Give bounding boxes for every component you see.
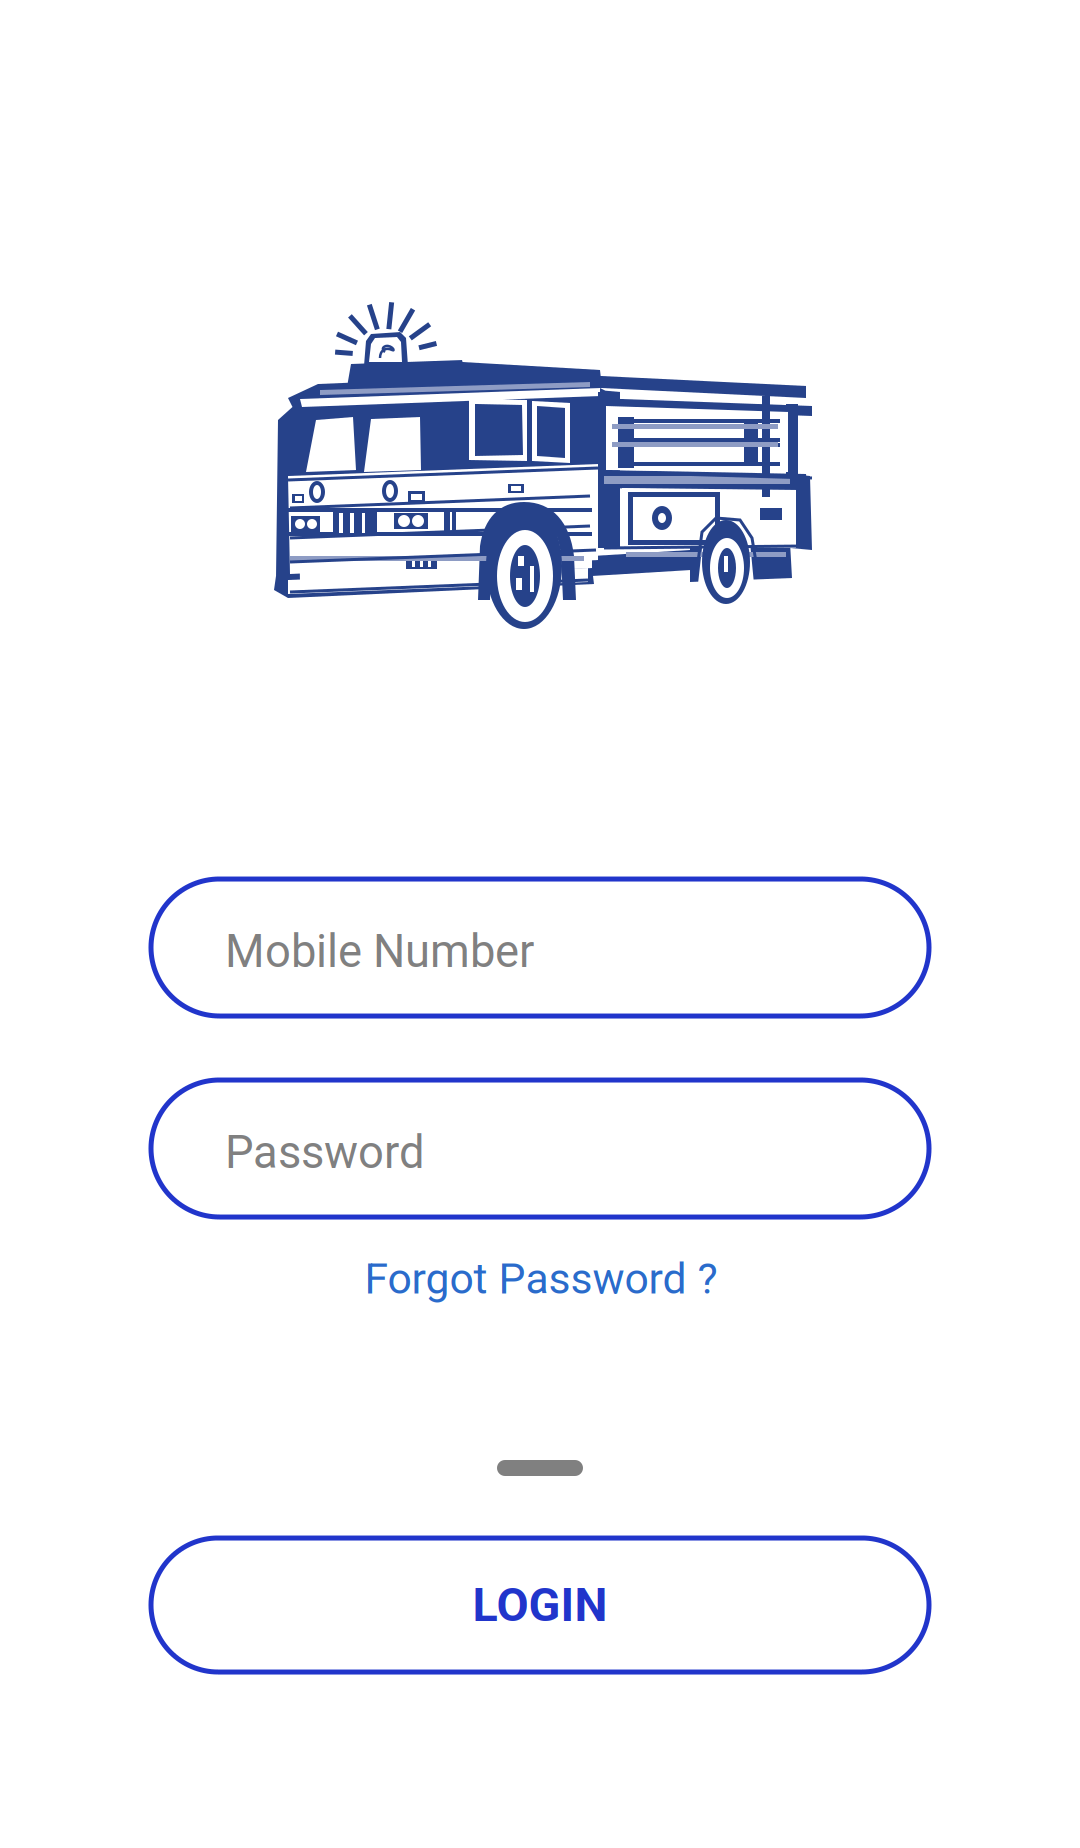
staticText: Mobile Number	[225, 925, 534, 978]
staticText: Password	[225, 1126, 425, 1179]
button[interactable]: Password	[151, 1080, 929, 1217]
button[interactable]: LOGIN	[151, 1538, 929, 1672]
staticText: Forgot Password ?	[364, 1254, 717, 1304]
button[interactable]: Mobile Number	[151, 879, 929, 1016]
button[interactable]: Forgot Password ?	[341, 1249, 741, 1309]
staticText: LOGIN	[472, 1578, 607, 1632]
